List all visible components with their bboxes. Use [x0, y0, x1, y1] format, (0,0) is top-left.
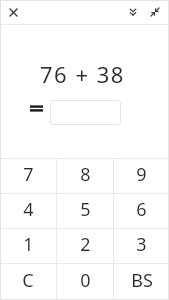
staticText: 4	[23, 197, 34, 222]
button[interactable]: 8	[57, 159, 113, 193]
button[interactable]: C	[0, 264, 56, 300]
staticText: 76 + 38	[40, 59, 125, 89]
button[interactable]: 5	[57, 194, 113, 228]
staticText: 5	[80, 197, 91, 222]
button[interactable]: 6	[114, 194, 169, 228]
staticText: C	[22, 268, 34, 293]
button[interactable]	[5, 4, 21, 20]
staticText: 9	[136, 162, 147, 187]
button[interactable]: 7	[0, 159, 56, 193]
staticText: 6	[136, 197, 147, 222]
staticText: 0	[80, 268, 91, 293]
staticText: 3	[136, 232, 147, 257]
button[interactable]	[125, 4, 141, 20]
staticText: 7	[23, 162, 34, 187]
button[interactable]: 4	[0, 194, 56, 228]
button[interactable]: 3	[114, 229, 169, 263]
button[interactable]: 0	[57, 264, 113, 300]
staticText: 8	[80, 162, 91, 187]
staticText: 1	[23, 232, 34, 257]
button[interactable]: 1	[0, 229, 56, 263]
staticText: 2	[80, 232, 91, 257]
button[interactable]: 9	[114, 159, 169, 193]
staticText: BS	[131, 268, 153, 293]
button[interactable]: 2	[57, 229, 113, 263]
button[interactable]	[147, 4, 163, 20]
button[interactable]	[50, 100, 121, 125]
button[interactable]: BS	[114, 264, 169, 300]
